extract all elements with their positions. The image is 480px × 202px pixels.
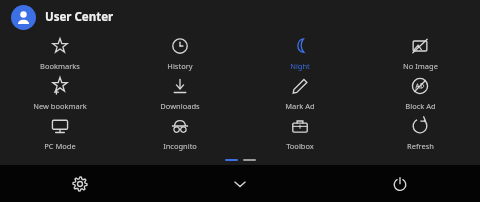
staticText: Incognito — [163, 141, 197, 151]
button[interactable]: Incognito — [120, 114, 240, 154]
staticText: PC Mode — [44, 141, 76, 151]
staticText: Night — [290, 61, 310, 71]
button[interactable]: Exit — [320, 165, 480, 202]
staticText: Refresh — [407, 141, 434, 151]
button[interactable]: Mark Ad — [240, 74, 360, 114]
button[interactable]: Refresh — [360, 114, 480, 154]
staticText: History — [167, 61, 193, 71]
button[interactable]: Block Ad — [360, 74, 480, 114]
button[interactable]: Downloads — [120, 74, 240, 114]
staticText: User Center — [45, 9, 114, 25]
button[interactable]: Bookmarks — [0, 34, 120, 74]
staticText: Mark Ad — [285, 101, 315, 111]
staticText: Downloads — [160, 101, 200, 111]
staticText: Block Ad — [405, 101, 436, 111]
staticText: Bookmarks — [40, 61, 80, 71]
button[interactable]: No Image — [360, 34, 480, 74]
button[interactable]: User Center — [0, 0, 480, 34]
button[interactable]: Collapse — [160, 165, 320, 202]
button[interactable]: Toolbox — [240, 114, 360, 154]
staticText: Toolbox — [286, 141, 314, 151]
button[interactable]: PC Mode — [0, 114, 120, 154]
staticText: No Image — [403, 61, 438, 71]
button[interactable]: New bookmark — [0, 74, 120, 114]
button[interactable]: Settings — [0, 165, 160, 202]
button[interactable]: History — [120, 34, 240, 74]
button[interactable]: Night — [240, 34, 360, 74]
staticText: New bookmark — [33, 101, 87, 111]
